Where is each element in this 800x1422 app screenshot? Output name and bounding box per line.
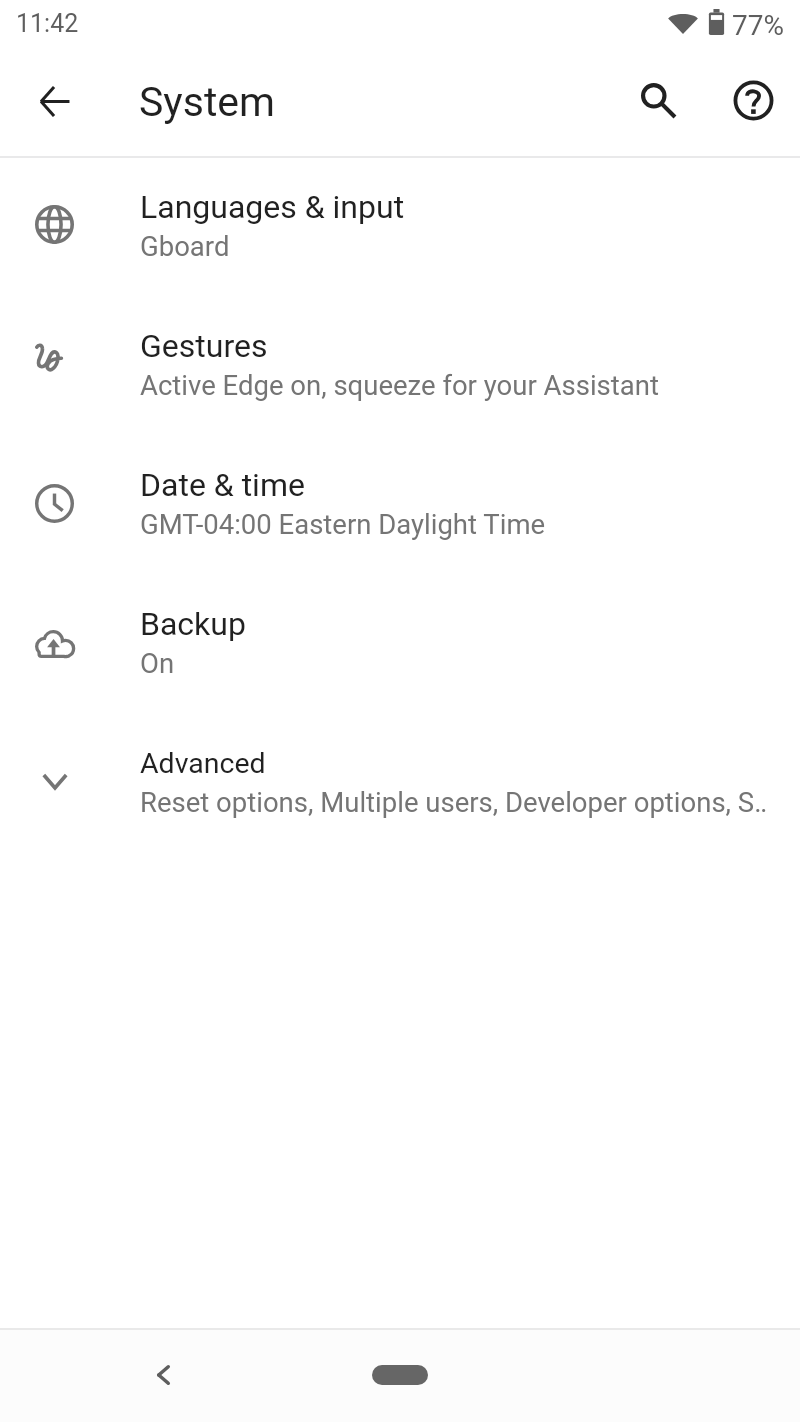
staticText: Advanced — [140, 747, 266, 780]
staticText: Gestures — [140, 327, 268, 365]
staticText: 11:42 — [16, 9, 79, 38]
staticText: System — [139, 78, 276, 126]
button[interactable]: Back — [135, 1347, 191, 1403]
button[interactable]: Date & time — [0, 433, 800, 572]
button[interactable]: Languages & input — [0, 155, 800, 294]
button[interactable]: Backup — [0, 572, 800, 711]
staticText: Backup — [140, 605, 246, 643]
staticText: On — [140, 647, 780, 679]
staticText: Reset options, Multiple users, Developer… — [140, 786, 780, 818]
staticText: GMT-04:00 Eastern Daylight Time — [140, 508, 780, 540]
button[interactable]: Back — [27, 74, 82, 129]
button[interactable]: Gestures — [0, 294, 800, 433]
button[interactable]: Home — [372, 1365, 428, 1385]
staticText: Gboard — [140, 230, 780, 262]
staticText: Languages & input — [140, 188, 405, 226]
staticText: Active Edge on, squeeze for your Assista… — [140, 369, 780, 401]
button[interactable]: Help — [726, 73, 781, 128]
staticText: 77% — [732, 9, 784, 42]
button[interactable]: Advanced — [0, 711, 800, 850]
button[interactable]: Search — [631, 73, 686, 128]
staticText: Date & time — [140, 466, 305, 504]
